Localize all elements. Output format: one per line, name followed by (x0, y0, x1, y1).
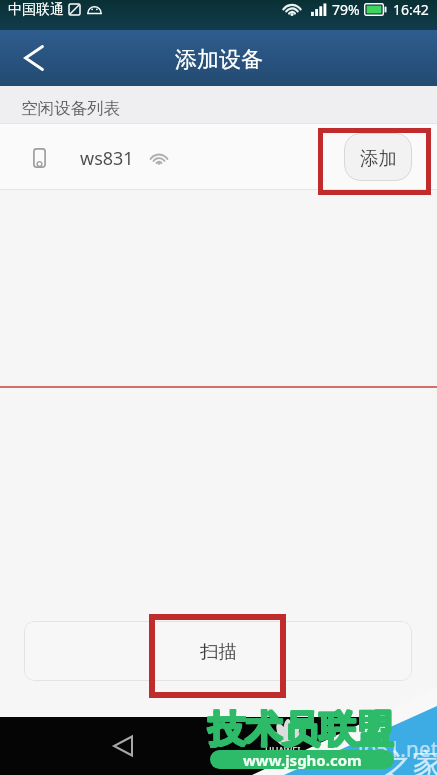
staticText: 之家 (382, 746, 437, 775)
staticText: 技术员联盟 (207, 705, 392, 752)
staticText: 79% (332, 0, 360, 19)
staticText: 技术员联盟 (209, 705, 394, 752)
staticText: 添加 (360, 147, 397, 170)
button[interactable]: ws831 (0, 124, 437, 189)
staticText: 技术员联盟 (208, 707, 393, 754)
button[interactable]: Back (0, 30, 62, 86)
button[interactable]: Back (99, 722, 147, 770)
staticText: 技术员联盟 (207, 706, 392, 753)
staticText: HUAWEI (265, 744, 301, 756)
staticText: 技术员联盟 (209, 707, 394, 754)
staticText: ws831 (80, 146, 134, 171)
staticText: 16:42 (393, 0, 429, 19)
staticText: 技术员联盟 (208, 705, 393, 752)
staticText: 技术员联盟 (209, 706, 394, 753)
button[interactable]: 扫描 (24, 621, 412, 681)
staticText: 中国联通 (8, 1, 64, 19)
staticText: 扫描 (200, 640, 237, 663)
staticText: www.jsgho.com (243, 750, 362, 769)
button[interactable]: 添加 (344, 133, 412, 181)
staticText: 添加设备 (175, 46, 263, 74)
staticText: 空闲设备列表 (21, 98, 120, 119)
staticText: jb51.net (358, 735, 437, 764)
staticText: 技术员联盟 (207, 707, 392, 754)
staticText: 技术员联盟 (208, 706, 393, 753)
